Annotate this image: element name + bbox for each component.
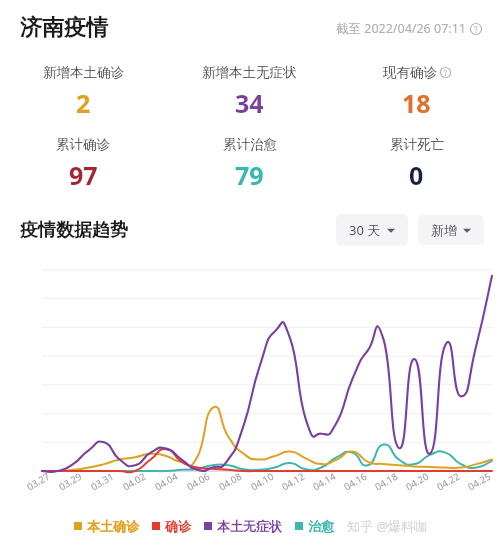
staticText: 04.25 — [465, 470, 494, 493]
button[interactable]: 累计死亡 — [333, 128, 500, 192]
staticText: 治愈 — [308, 518, 334, 534]
other: Help — [470, 23, 482, 35]
staticText: 0 — [409, 158, 424, 192]
other: Help — [440, 67, 451, 78]
staticText: 累计治愈 — [223, 136, 277, 153]
staticText: 30 天 — [349, 221, 381, 239]
button[interactable]: 30 天 — [336, 214, 408, 246]
staticText: 03.29 — [56, 470, 85, 493]
staticText: 新增本土确诊 — [43, 64, 124, 81]
staticText: 截至 2022/04/26 07:11 — [336, 20, 466, 37]
staticText: 04.10 — [248, 470, 277, 493]
staticText: 累计确诊 — [56, 136, 110, 153]
button[interactable]: 累计确诊 — [0, 128, 166, 192]
staticText: 04.04 — [152, 470, 181, 493]
staticText: 04.20 — [403, 470, 432, 493]
staticText: 知乎 @爆料咖 — [347, 517, 428, 535]
staticText: 04.14 — [310, 470, 339, 493]
button[interactable]: 确诊 — [151, 516, 192, 536]
staticText: 04.06 — [184, 470, 213, 493]
staticText: 本土确诊 — [87, 518, 139, 534]
staticText: 04.16 — [341, 470, 370, 493]
staticText: 18 — [402, 86, 431, 120]
button[interactable]: 累计治愈 — [166, 128, 333, 192]
staticText: 04.18 — [372, 470, 401, 493]
staticText: 04.02 — [120, 470, 149, 493]
staticText: 疫情数据趋势 — [20, 219, 128, 242]
button[interactable]: 本土无症状 — [203, 516, 283, 536]
staticText: 本土无症状 — [217, 518, 282, 534]
staticText: 04.22 — [434, 470, 463, 493]
staticText: 确诊 — [165, 518, 191, 534]
staticText: 34 — [235, 86, 264, 120]
staticText: 04.12 — [279, 470, 308, 493]
staticText: 新增本土无症状 — [202, 64, 297, 81]
button[interactable]: 治愈 — [294, 516, 335, 536]
staticText: 累计死亡 — [390, 136, 444, 153]
button[interactable]: 新增本土确诊 — [0, 56, 166, 120]
button[interactable]: 本土确诊 — [73, 516, 140, 536]
staticText: 济南疫情 — [20, 14, 108, 42]
staticText: 现有确诊 — [383, 64, 437, 81]
staticText: 03.31 — [88, 470, 117, 493]
staticText: 03.27 — [24, 470, 53, 493]
staticText: 新增 — [431, 222, 457, 238]
staticText: 79 — [235, 158, 264, 192]
staticText: 04.08 — [216, 470, 245, 493]
button[interactable]: 新增本土无症状 — [166, 56, 333, 120]
staticText: 2 — [76, 86, 91, 120]
button[interactable]: 新增 — [418, 215, 484, 245]
button[interactable]: 现有确诊 — [333, 56, 500, 120]
button[interactable]: 截至 2022/04/26 07:11 — [334, 16, 484, 41]
staticText: 97 — [69, 158, 98, 192]
